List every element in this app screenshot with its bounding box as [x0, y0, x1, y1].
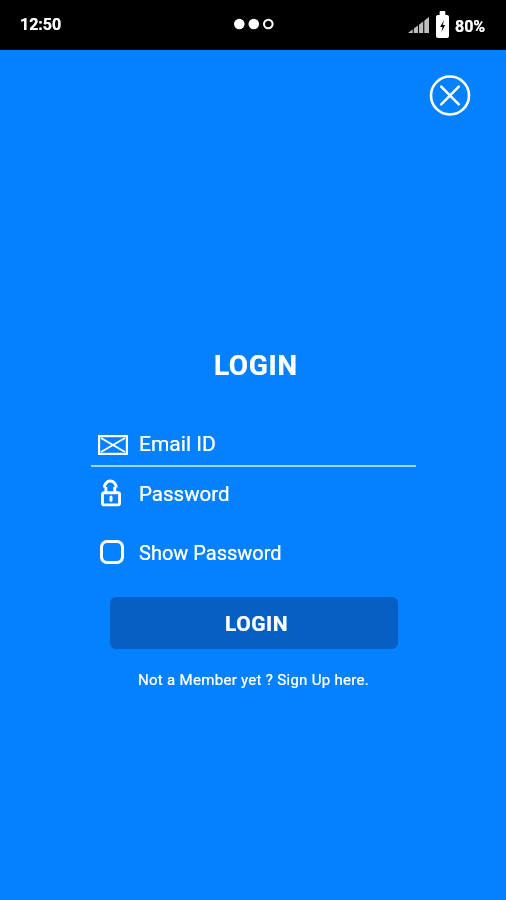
button[interactable]: Email ID — [91, 428, 416, 467]
staticText: Email ID — [139, 432, 216, 457]
button[interactable]: Not a Member yet ? Sign Up here. — [1, 671, 506, 689]
button[interactable]: Password — [91, 474, 416, 514]
staticText: Password — [139, 482, 230, 506]
button[interactable]: Show Password — [98, 536, 282, 568]
staticText: 12:50 — [20, 15, 62, 34]
staticText: 80% — [455, 17, 486, 36]
button[interactable]: LOGIN — [110, 597, 398, 649]
staticText: Show Password — [139, 541, 282, 564]
staticText: LOGIN — [225, 612, 288, 637]
staticText: LOGIN — [214, 349, 298, 382]
button[interactable]: Close — [428, 73, 472, 117]
staticText: Not a Member yet ? Sign Up here. — [138, 671, 370, 689]
